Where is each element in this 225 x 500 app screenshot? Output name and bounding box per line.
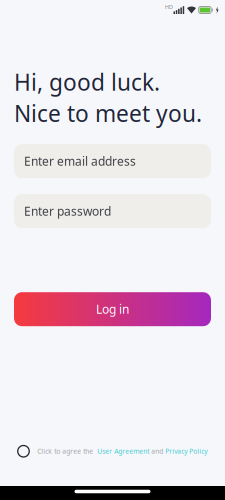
staticText: Enter password xyxy=(24,203,111,219)
staticText: Privacy Policy xyxy=(165,447,207,456)
button[interactable]: Log in xyxy=(14,292,211,326)
button[interactable]: Privacy Policy xyxy=(165,447,207,456)
staticText: and xyxy=(149,447,165,456)
staticText: Log in xyxy=(96,301,129,317)
staticText: User Agreement xyxy=(97,447,149,456)
staticText: Enter email address xyxy=(24,153,136,169)
staticText: Nice to meet you. xyxy=(14,98,202,128)
staticText: Hi, good luck. xyxy=(14,67,160,97)
staticText: HD xyxy=(165,3,173,11)
button[interactable]: Enter password xyxy=(14,194,211,228)
button[interactable]: User Agreement xyxy=(97,447,149,456)
staticText: Click to agree the xyxy=(37,447,97,456)
button[interactable]: Agree to terms xyxy=(18,445,29,457)
button[interactable]: Enter email address xyxy=(14,144,211,178)
